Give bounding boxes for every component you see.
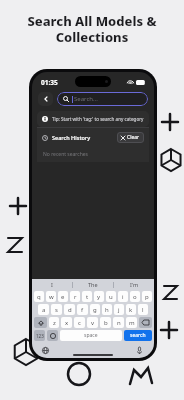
staticText: space: [84, 332, 98, 339]
button[interactable]: I'm: [114, 279, 154, 290]
staticText: 123: [36, 333, 44, 339]
button[interactable]: u: [106, 291, 116, 302]
staticText: f: [81, 306, 84, 314]
staticText: c: [78, 319, 81, 327]
button[interactable]: Back: [38, 92, 53, 106]
button[interactable]: m: [126, 317, 137, 328]
staticText: g: [93, 306, 97, 314]
button[interactable]: l: [138, 304, 148, 315]
staticText: b: [104, 319, 108, 327]
button[interactable]: g: [90, 304, 100, 315]
button[interactable]: q: [34, 291, 44, 302]
staticText: The: [88, 281, 98, 288]
staticText: i: [122, 293, 124, 301]
button[interactable]: n: [113, 317, 124, 328]
button[interactable]: search: [124, 330, 152, 341]
button[interactable]: r: [70, 291, 80, 302]
staticText: 01:35: [41, 78, 58, 87]
button[interactable]: x: [61, 317, 72, 328]
staticText: k: [129, 306, 133, 314]
staticText: Clear: [127, 134, 140, 141]
button[interactable]: b: [100, 317, 111, 328]
button[interactable]: s: [51, 304, 62, 315]
button[interactable]: Shift: [34, 317, 47, 328]
staticText: j: [118, 306, 120, 314]
button[interactable]: space: [60, 330, 122, 341]
button[interactable]: z: [49, 317, 59, 328]
button[interactable]: j: [114, 304, 124, 315]
staticText: y: [97, 293, 101, 301]
staticText: I'm: [130, 281, 139, 288]
staticText: h: [105, 306, 109, 314]
staticText: q: [37, 293, 41, 301]
button[interactable]: 123: [34, 330, 45, 341]
staticText: m: [129, 319, 135, 327]
staticText: a: [42, 306, 46, 314]
staticText: e: [61, 293, 65, 301]
staticText: Search History: [52, 134, 91, 141]
staticText: Search All Models & Collections: [27, 12, 157, 45]
button[interactable]: p: [142, 291, 152, 302]
button[interactable]: Clear: [117, 132, 144, 143]
button[interactable]: i: [118, 291, 128, 302]
staticText: r: [74, 293, 77, 301]
button[interactable]: d: [64, 304, 75, 315]
button[interactable]: h: [102, 304, 112, 315]
staticText: t: [86, 293, 89, 301]
staticText: z: [53, 319, 56, 327]
staticText: n: [117, 319, 121, 327]
button[interactable]: f: [77, 304, 88, 315]
staticText: search: [130, 332, 146, 339]
button[interactable]: Backspace: [139, 317, 152, 328]
staticText: p: [145, 293, 149, 301]
staticText: No recent searches: [43, 151, 89, 158]
button[interactable]: c: [74, 317, 85, 328]
staticText: u: [109, 293, 113, 301]
button[interactable]: v: [87, 317, 98, 328]
button[interactable]: Tip: Start with 'tag:' to search any cat…: [37, 111, 149, 127]
button[interactable]: e: [58, 291, 68, 302]
button[interactable]: y: [94, 291, 104, 302]
button[interactable]: o: [130, 291, 140, 302]
button[interactable]: w: [46, 291, 56, 302]
staticText: v: [91, 319, 95, 327]
staticText: I: [51, 281, 53, 288]
button[interactable]: The: [73, 279, 113, 290]
button[interactable]: Emoji: [47, 330, 58, 341]
button[interactable]: Search...: [57, 92, 148, 106]
staticText: w: [49, 293, 54, 301]
staticText: Tip: Start with 'tag:' to search any cat…: [52, 116, 144, 122]
button[interactable]: I: [32, 279, 72, 290]
staticText: l: [142, 306, 144, 314]
staticText: s: [55, 306, 58, 314]
staticText: Search...: [74, 95, 98, 103]
button[interactable]: k: [126, 304, 136, 315]
staticText: x: [65, 319, 69, 327]
button[interactable]: a: [38, 304, 49, 315]
staticText: d: [68, 306, 72, 314]
button[interactable]: t: [82, 291, 92, 302]
staticText: o: [133, 293, 137, 301]
